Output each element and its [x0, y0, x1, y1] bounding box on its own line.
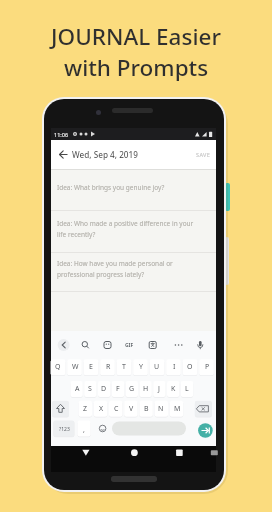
button[interactable]: [171, 446, 187, 460]
staticText: Q: [55, 362, 61, 372]
button[interactable]: [126, 446, 142, 460]
button[interactable]: [78, 446, 94, 460]
staticText: L: [185, 384, 189, 394]
staticText: S: [88, 384, 92, 394]
staticText: N: [158, 404, 164, 414]
staticText: K: [171, 384, 176, 394]
button[interactable]: Wed, Sep 4, 2019: [51, 140, 216, 169]
staticText: O: [187, 362, 193, 372]
staticText: ,: [83, 425, 85, 435]
staticText: 11:06: [54, 131, 69, 138]
staticText: Idea: How have you made personal or prof…: [57, 259, 173, 279]
staticText: Wed, Sep 4, 2019: [72, 149, 138, 160]
staticText: Z: [83, 404, 88, 414]
button[interactable]: [59, 150, 68, 159]
button[interactable]: SAVE: [196, 151, 211, 158]
staticText: Y: [139, 362, 143, 372]
staticText: R: [106, 362, 111, 372]
staticText: C: [114, 404, 119, 414]
staticText: A: [75, 384, 80, 394]
staticText: U: [154, 362, 160, 372]
staticText: V: [129, 404, 134, 414]
button[interactable]: Idea: What brings you genuine joy?: [51, 170, 216, 210]
staticText: G: [129, 384, 135, 394]
staticText: with Prompts: [64, 52, 209, 83]
staticText: ?123: [59, 426, 70, 433]
staticText: D: [101, 384, 107, 394]
staticText: B: [144, 404, 149, 414]
staticText: W: [72, 362, 79, 372]
button[interactable]: Idea: Who made a positive difference in …: [51, 211, 216, 252]
staticText: I: [173, 362, 176, 372]
button[interactable]: Idea: How have you made personal or prof…: [51, 253, 216, 291]
staticText: Idea: Who made a positive difference in …: [57, 219, 194, 239]
staticText: X: [99, 404, 104, 414]
staticText: P: [205, 362, 210, 372]
staticText: SAVE: [196, 151, 211, 158]
staticText: M: [174, 404, 181, 414]
staticText: T: [122, 362, 126, 372]
staticText: Idea: What brings you genuine joy?: [57, 183, 165, 192]
staticText: E: [89, 362, 93, 372]
staticText: H: [143, 384, 149, 394]
staticText: J: [158, 384, 160, 394]
staticText: JOURNAL Easier: [51, 21, 221, 52]
staticText: GIF: [125, 342, 134, 349]
staticText: F: [116, 384, 120, 394]
